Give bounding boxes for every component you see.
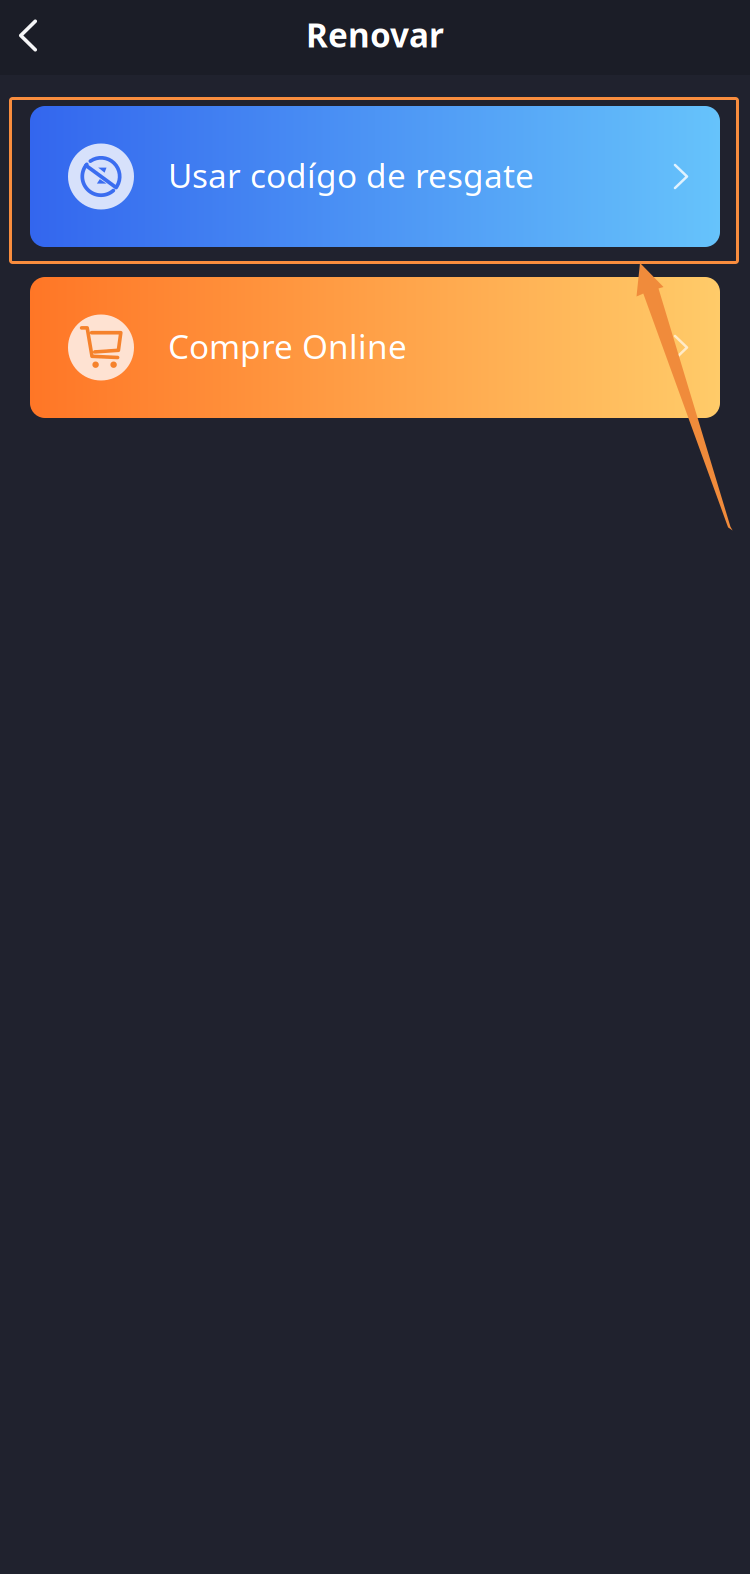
button[interactable]: Back <box>0 6 56 68</box>
staticText: Usar codígo de resgate <box>168 153 534 197</box>
staticText: Renovar <box>306 12 444 57</box>
button[interactable]: Usar codígo de resgate <box>30 106 720 247</box>
staticText: Compre Online <box>168 324 407 368</box>
button[interactable]: Compre Online <box>30 277 720 418</box>
